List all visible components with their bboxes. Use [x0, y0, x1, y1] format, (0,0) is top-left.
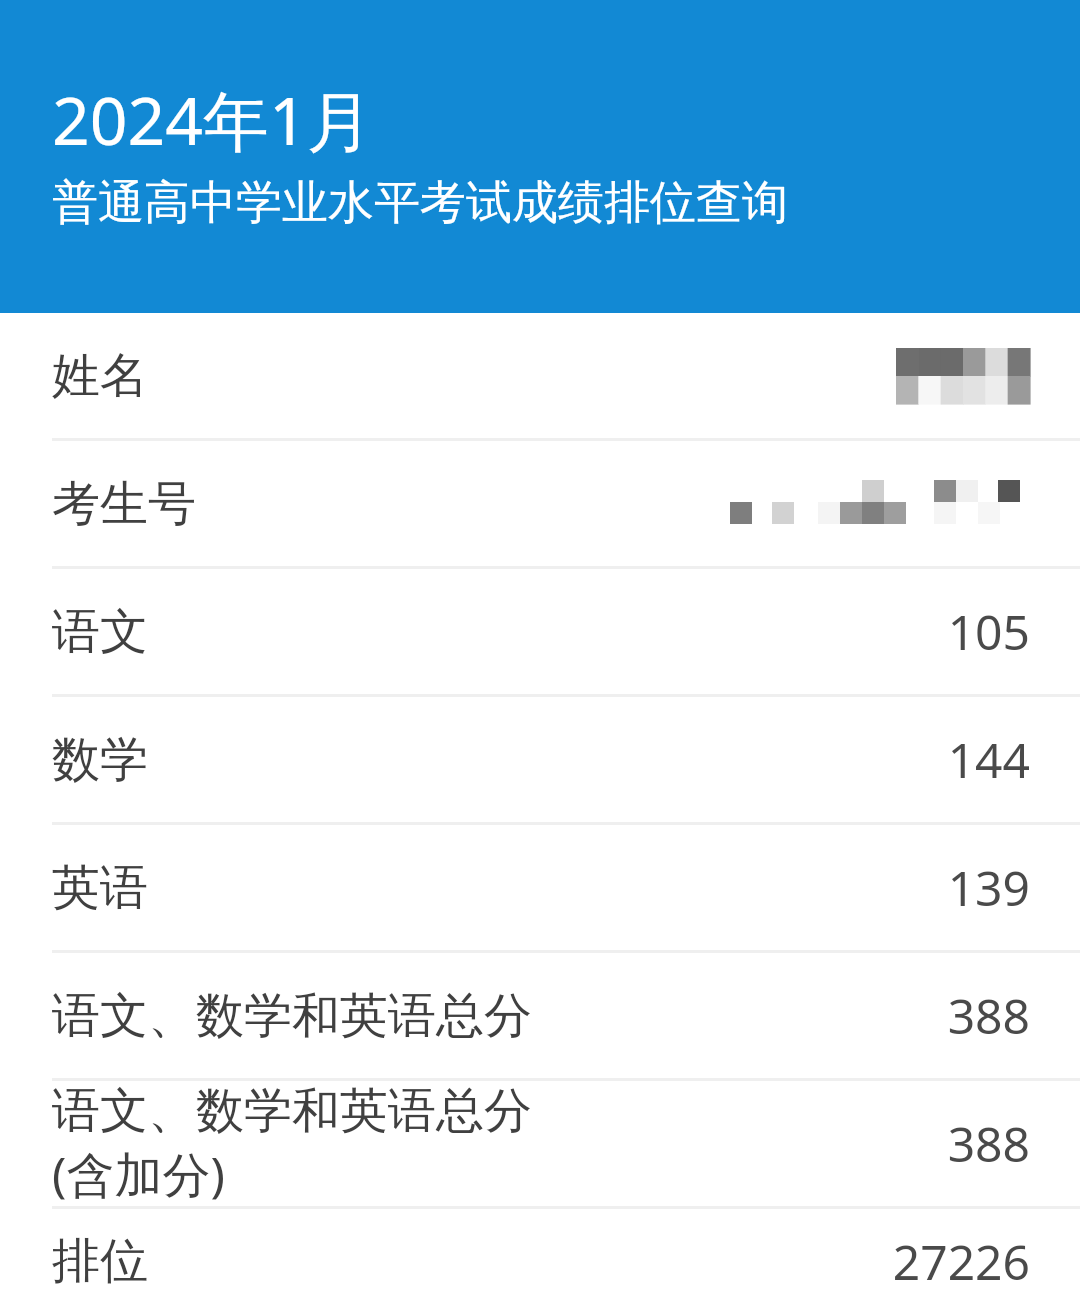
button[interactable]: 语文 [0, 569, 1080, 694]
staticText: 27226 [892, 1229, 1030, 1294]
staticText: 语文、数学和英语总分 [52, 1081, 532, 1141]
staticText: 语文、数学和英语总分 [52, 986, 947, 1046]
staticText: 105 [947, 599, 1030, 664]
button[interactable]: 数学 [0, 697, 1080, 822]
staticText: 139 [947, 855, 1030, 920]
staticText: 2024年1月 [52, 74, 373, 164]
staticText: 数学 [52, 730, 947, 790]
staticText: 144 [947, 727, 1030, 792]
staticText: (含加分) [52, 1141, 225, 1206]
button[interactable]: 语文、数学和英语总分 [0, 953, 1080, 1078]
staticText: 388 [947, 983, 1030, 1048]
staticText: 388 [947, 1111, 1030, 1176]
button[interactable]: 考生号 已隐藏 [0, 441, 1080, 566]
staticText: 姓名 [52, 346, 896, 406]
button[interactable]: 排位 [0, 1209, 1080, 1313]
staticText: 考生号 [52, 474, 730, 534]
button[interactable]: 姓名 已隐藏 [0, 313, 1080, 438]
staticText: 普通高中学业水平考试成绩排位查询 [52, 174, 788, 232]
staticText: 语文 [52, 602, 947, 662]
button[interactable]: 语文、数学和英语总分 [0, 1081, 1080, 1206]
staticText: 排位 [52, 1231, 892, 1291]
button[interactable]: 英语 [0, 825, 1080, 950]
staticText: 英语 [52, 858, 947, 918]
